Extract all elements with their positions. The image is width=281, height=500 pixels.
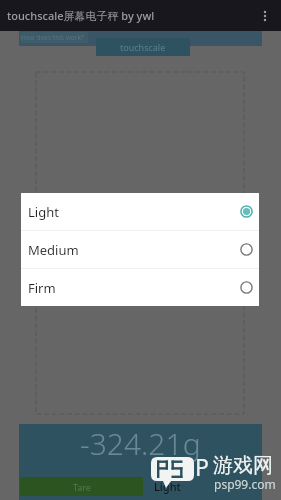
- staticText: touchscale屏幕电子秤 by ywl: [7, 8, 155, 23]
- button[interactable]: touchscale: [96, 38, 190, 56]
- staticText: Light: [28, 203, 59, 221]
- staticText: Firm: [28, 279, 56, 297]
- button[interactable]: Light: [21, 193, 259, 230]
- staticText: psp99.com: [214, 476, 276, 492]
- staticText: Light: [154, 479, 181, 494]
- staticText: touchscale: [120, 41, 166, 53]
- staticText: 游戏网: [213, 453, 273, 478]
- staticText: -324.21g: [80, 423, 201, 464]
- button[interactable]: Medium: [21, 231, 259, 268]
- staticText: Medium: [28, 241, 79, 259]
- button[interactable]: Firm: [21, 269, 259, 306]
- staticText: P: [195, 451, 209, 482]
- button[interactable]: Light: [147, 477, 257, 496]
- staticText: Tare: [73, 481, 91, 493]
- button[interactable]: How does this work?: [20, 32, 88, 43]
- button[interactable]: Tare: [20, 477, 143, 496]
- button[interactable]: More options: [249, 0, 281, 31]
- staticText: How does this work?: [21, 33, 84, 42]
